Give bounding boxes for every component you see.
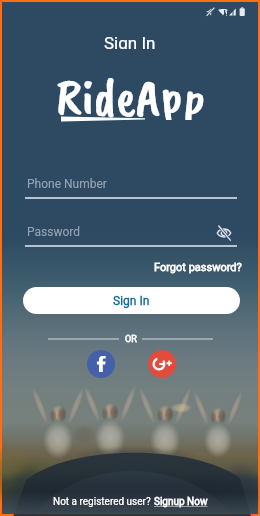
button[interactable]: Sign in with Google bbox=[148, 350, 176, 378]
button[interactable]: Show password bbox=[217, 227, 231, 239]
button[interactable]: Sign In bbox=[23, 287, 240, 314]
staticText: OR bbox=[125, 334, 137, 345]
staticText: Sign In bbox=[104, 33, 156, 49]
button[interactable]: Forgot password? bbox=[154, 260, 242, 275]
staticText: Signup Now bbox=[154, 496, 208, 508]
staticText: Password bbox=[27, 225, 81, 239]
button[interactable]: Sign in with Facebook bbox=[87, 350, 115, 378]
staticText: Phone Number bbox=[27, 177, 107, 191]
staticText: Sign In bbox=[113, 294, 150, 308]
button[interactable]: Not a registered user? bbox=[2, 490, 258, 514]
staticText: Forgot password? bbox=[154, 261, 242, 274]
staticText: Not a registered user? bbox=[53, 496, 154, 508]
staticText: RideApp bbox=[56, 64, 205, 120]
